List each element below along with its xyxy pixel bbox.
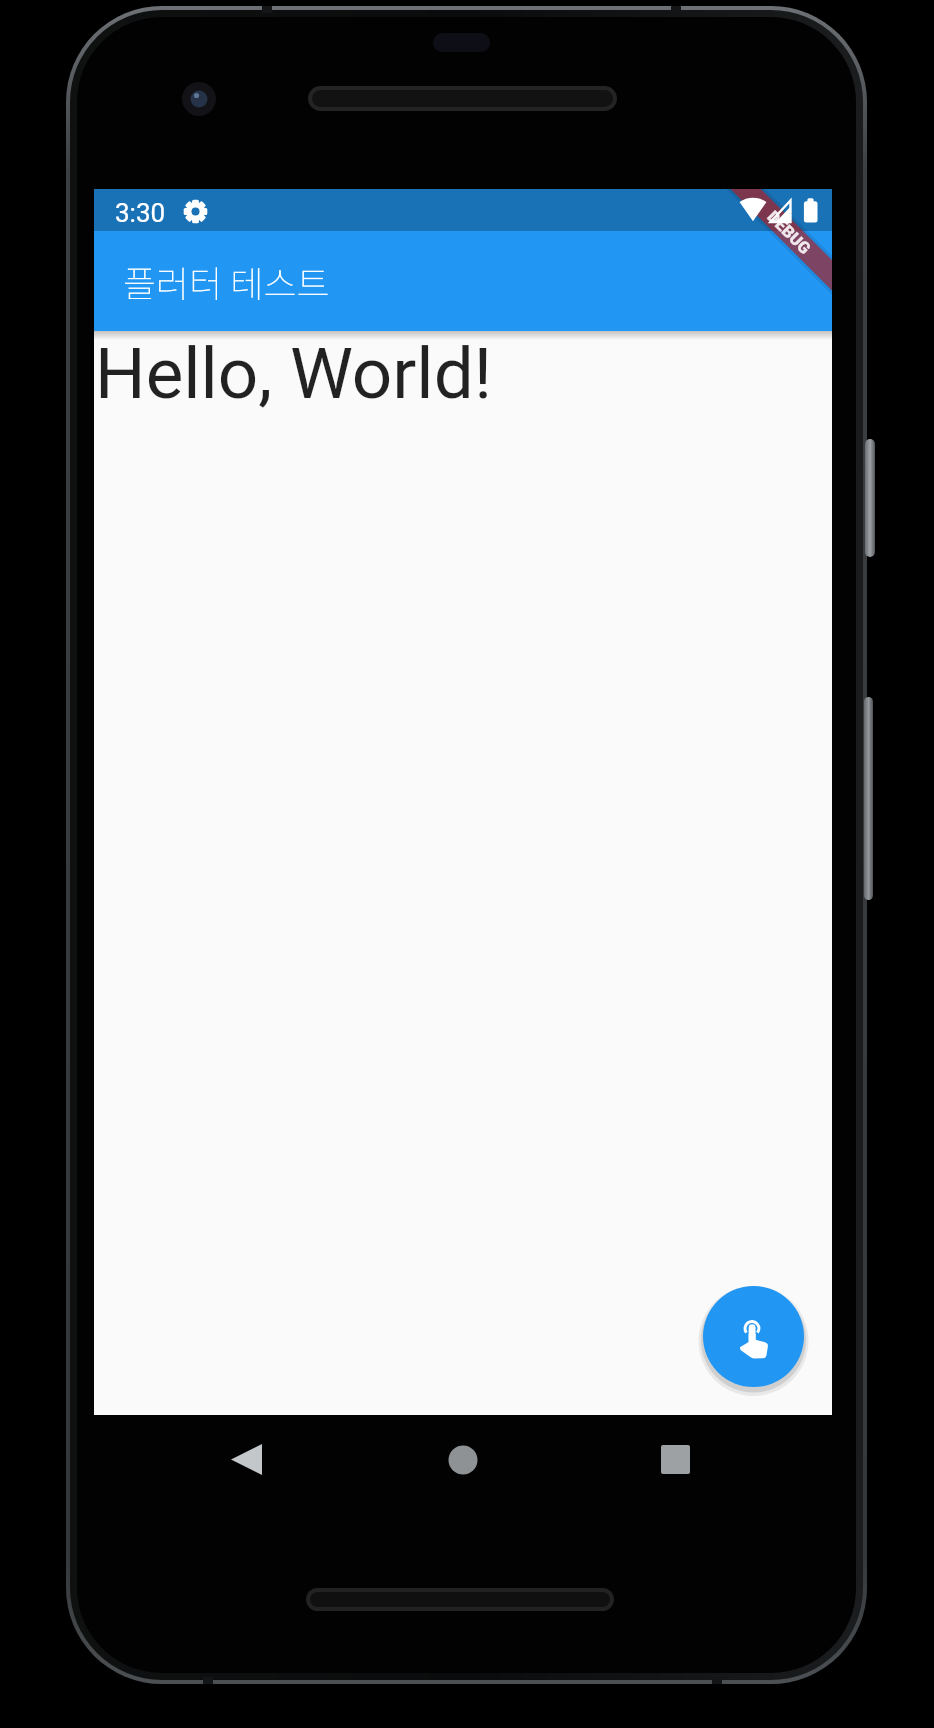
staticText: 3:30 [115, 198, 166, 228]
staticText: 플러터 테스트 [123, 255, 330, 307]
staticText: Hello, World! [95, 332, 492, 415]
button[interactable] [224, 1437, 269, 1482]
button[interactable] [440, 1437, 485, 1482]
button[interactable] [703, 1286, 804, 1387]
button[interactable] [653, 1437, 698, 1482]
staticText: DEBUG [763, 207, 814, 258]
